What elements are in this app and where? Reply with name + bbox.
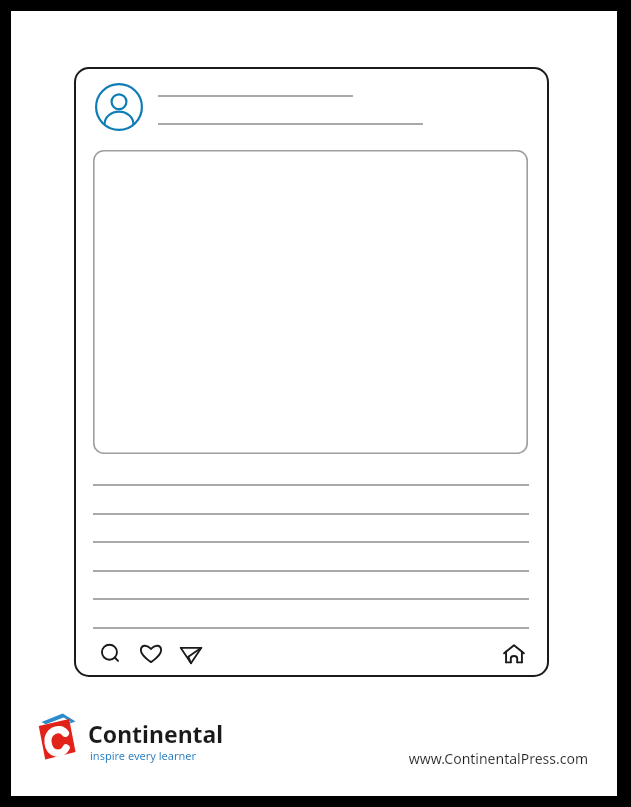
staticText: Continental — [88, 718, 224, 749]
staticText: inspire every learner — [90, 748, 196, 763]
button[interactable] — [93, 150, 528, 454]
button[interactable]: Profile avatar — [74, 67, 549, 677]
button[interactable]: Continental — [36, 712, 196, 766]
button[interactable]: Home — [497, 637, 531, 671]
button[interactable]: Profile avatar — [95, 83, 143, 131]
button[interactable]: www.ContinentalPress.com — [408, 749, 588, 768]
button[interactable]: Like — [134, 637, 168, 671]
button[interactable]: Share — [174, 637, 208, 671]
button[interactable]: Search — [94, 637, 128, 671]
